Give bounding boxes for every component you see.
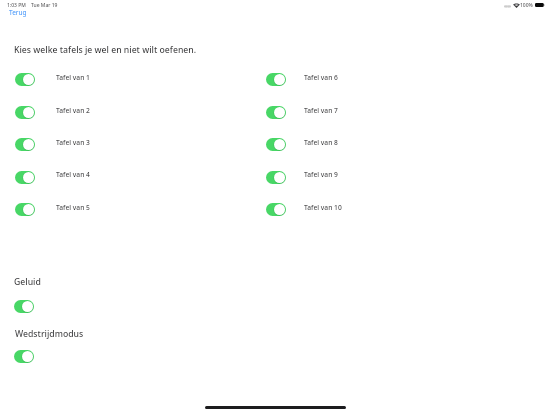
staticText: Tafel van 4 (56, 170, 90, 179)
button[interactable]: Tafel van 1 (15, 73, 35, 86)
staticText: Tafel van 6 (304, 73, 338, 82)
button[interactable]: Tafel van 2 (15, 106, 35, 119)
button[interactable]: Tafel van 4 (11, 165, 98, 189)
staticText: Tafel van 5 (56, 203, 90, 212)
button[interactable]: Tafel van 9 (266, 171, 286, 184)
button[interactable]: Tafel van 3 (15, 138, 35, 151)
staticText: Tafel van 9 (304, 170, 338, 179)
button[interactable]: Tafel van 6 (266, 73, 286, 86)
button[interactable]: Terug (9, 8, 27, 17)
button[interactable]: Tafel van 6 (262, 67, 346, 91)
button[interactable]: Tafel van 4 (15, 171, 35, 184)
staticText: Tafel van 8 (304, 138, 338, 147)
button[interactable]: Tafel van 7 (266, 106, 286, 119)
button[interactable]: Wedstrijdmodus (14, 350, 34, 363)
button[interactable]: Tafel van 8 (266, 138, 286, 151)
button[interactable]: Tafel van 10 (262, 197, 346, 221)
button[interactable]: Tafel van 8 (262, 132, 346, 156)
staticText: Wedstrijdmodus (15, 328, 84, 340)
staticText: Tafel van 2 (56, 106, 90, 115)
staticText: Terug (9, 8, 27, 17)
button[interactable]: Tafel van 2 (11, 100, 98, 124)
staticText: Geluid (14, 276, 41, 288)
staticText: Tafel van 10 (304, 203, 342, 212)
button[interactable]: Tafel van 5 (15, 203, 35, 216)
button[interactable]: Tafel van 7 (262, 100, 346, 124)
staticText: 1:03 PM (7, 2, 26, 9)
staticText: Tafel van 7 (304, 106, 338, 115)
button[interactable]: Tafel van 10 (266, 203, 286, 216)
staticText: 100% (520, 2, 533, 9)
staticText: Tafel van 3 (56, 138, 90, 147)
button[interactable]: Tafel van 3 (11, 132, 98, 156)
staticText: Tue Mar 19 (31, 2, 58, 9)
button[interactable]: Geluid (14, 300, 34, 313)
button[interactable]: Tafel van 1 (11, 67, 98, 91)
button[interactable]: Tafel van 9 (262, 165, 346, 189)
staticText: Kies welke tafels je wel en niet wilt oe… (14, 44, 197, 56)
staticText: Tafel van 1 (56, 73, 90, 82)
button[interactable]: Tafel van 5 (11, 197, 98, 221)
